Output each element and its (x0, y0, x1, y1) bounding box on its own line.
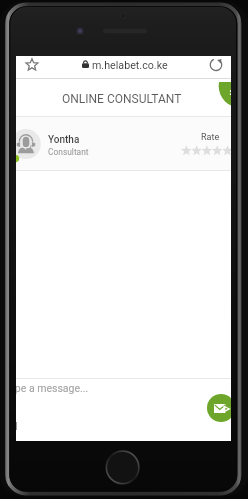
staticText: ONLINE CONSULTANT (62, 92, 182, 106)
button[interactable]: Reload (204, 56, 228, 75)
staticText: Rate (201, 132, 220, 143)
button[interactable]: Send message (207, 394, 231, 422)
staticText: Type a message... (16, 382, 89, 394)
button[interactable]: Chat options (206, 82, 231, 116)
staticText: Yontha (48, 134, 80, 146)
staticText: m.helabet.co.ke (92, 59, 168, 72)
button[interactable]: Bookmark (20, 56, 44, 75)
staticText: Consultant (48, 147, 89, 157)
button[interactable]: Yontha (16, 117, 231, 171)
